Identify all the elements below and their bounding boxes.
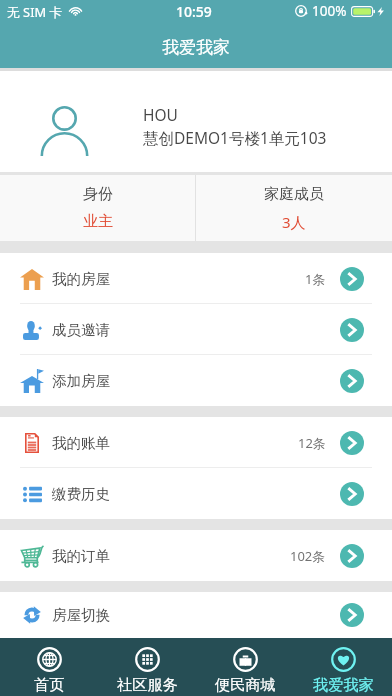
button[interactable]: 我的房屋 bbox=[0, 253, 392, 304]
staticText: 我的房屋 bbox=[52, 270, 110, 288]
staticText: 家庭成员 bbox=[264, 185, 324, 204]
staticText: 房屋切换 bbox=[52, 606, 110, 624]
other: 缴费历史 bbox=[340, 482, 364, 506]
staticText: 102条 bbox=[290, 547, 326, 565]
button[interactable]: 我的订单 bbox=[0, 530, 392, 581]
staticText: 首页 bbox=[34, 675, 65, 694]
other: 我的订单 bbox=[340, 544, 364, 568]
other: 我的房屋 bbox=[340, 267, 364, 291]
staticText: 我爱我家 bbox=[162, 37, 230, 58]
staticText: 10:59 bbox=[176, 2, 212, 21]
staticText: 1条 bbox=[305, 270, 326, 288]
staticText: 身份 bbox=[83, 185, 113, 204]
staticText: 我爱我家 bbox=[313, 675, 374, 694]
other: 房屋切换 bbox=[340, 603, 364, 627]
button[interactable]: 身份 bbox=[0, 175, 195, 241]
button[interactable]: 我的账单 bbox=[0, 417, 392, 468]
button[interactable]: 社区服务 bbox=[98, 638, 196, 696]
other: 我的账单 bbox=[340, 431, 364, 455]
button[interactable]: HOU bbox=[0, 71, 392, 172]
button[interactable]: 我爱我家 bbox=[294, 638, 392, 696]
button[interactable]: 添加房屋 bbox=[0, 355, 392, 406]
button[interactable]: 家庭成员 bbox=[196, 175, 392, 241]
button[interactable]: 缴费历史 bbox=[0, 468, 392, 519]
staticText: 缴费历史 bbox=[52, 485, 110, 503]
other: 成员邀请 bbox=[340, 318, 364, 342]
staticText: 社区服务 bbox=[117, 675, 178, 694]
staticText: 3人 bbox=[282, 212, 306, 232]
staticText: 慧创DEMO1号楼1单元103 bbox=[143, 127, 327, 148]
staticText: 无 SIM 卡 bbox=[7, 3, 63, 20]
staticText: 12条 bbox=[298, 434, 326, 452]
staticText: 我的账单 bbox=[52, 434, 110, 452]
button[interactable]: 成员邀请 bbox=[0, 304, 392, 355]
staticText: HOU bbox=[143, 104, 178, 125]
other: 添加房屋 bbox=[340, 369, 364, 393]
button[interactable]: 房屋切换 bbox=[0, 592, 392, 638]
staticText: 100% bbox=[312, 2, 347, 20]
button[interactable]: 首页 bbox=[0, 638, 98, 696]
staticText: 业主 bbox=[83, 212, 113, 231]
staticText: 成员邀请 bbox=[52, 321, 110, 339]
button[interactable]: 便民商城 bbox=[196, 638, 294, 696]
staticText: 便民商城 bbox=[215, 675, 276, 694]
staticText: 我的订单 bbox=[52, 547, 110, 565]
staticText: 添加房屋 bbox=[52, 372, 110, 390]
